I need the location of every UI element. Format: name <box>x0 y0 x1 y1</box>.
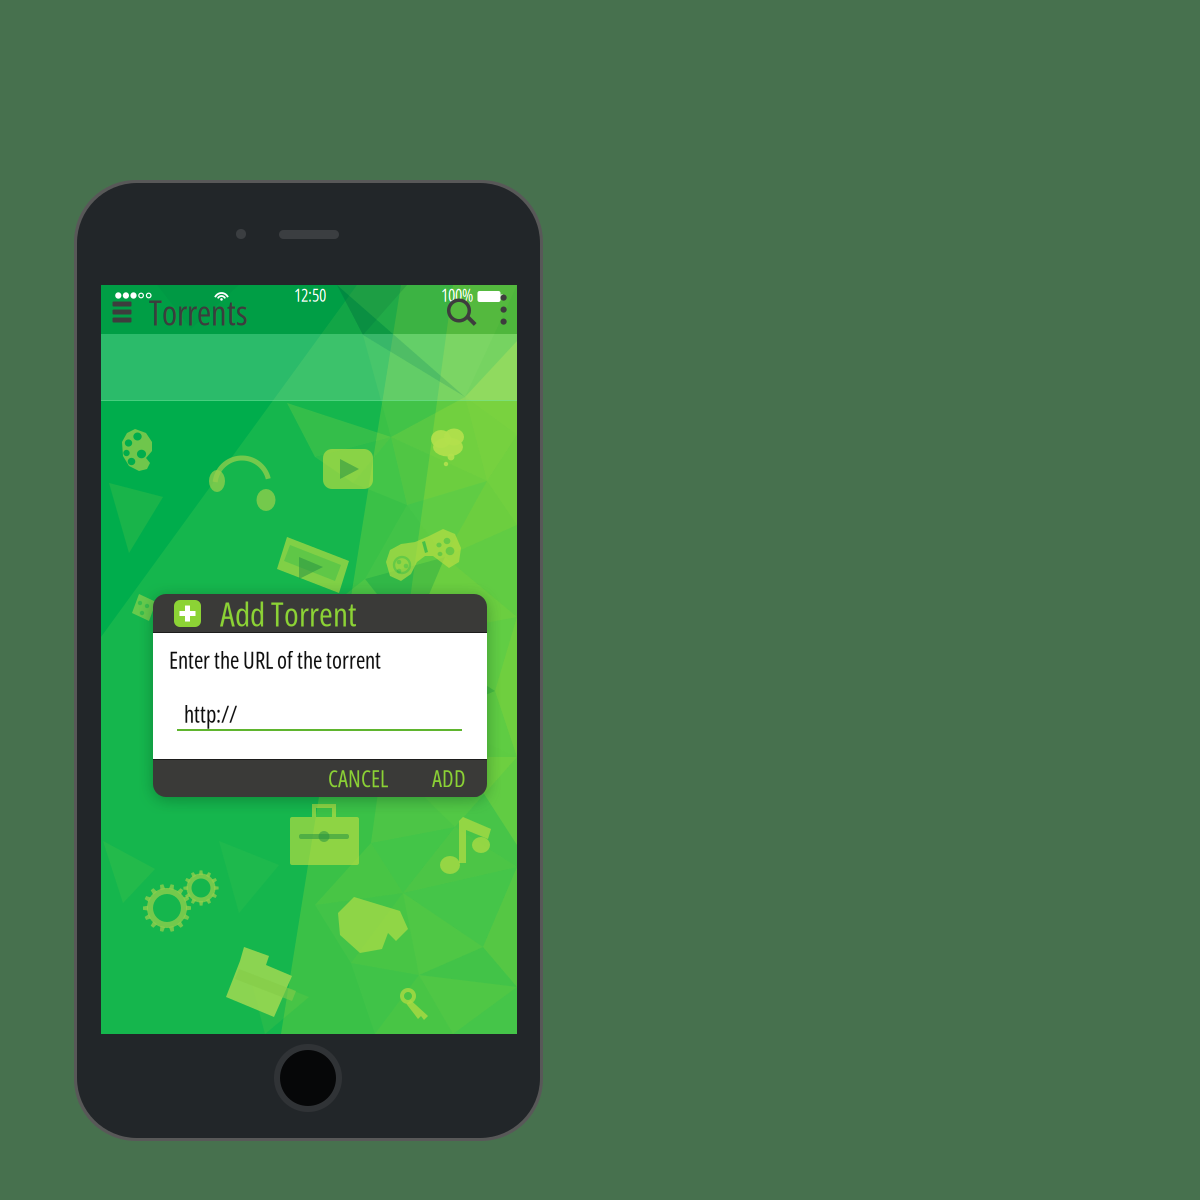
staticText: Enter the URL of the torrent <box>169 645 381 675</box>
button[interactable]: CANCEL <box>315 760 401 797</box>
staticText: CANCEL <box>328 763 388 794</box>
staticText: Torrents <box>149 288 248 336</box>
staticText: Add Torrent <box>220 591 356 636</box>
staticText: 100% <box>441 283 473 307</box>
button[interactable]: Search <box>445 299 485 327</box>
button[interactable]: ADD <box>419 760 479 797</box>
staticText: 12:50 <box>294 283 326 307</box>
staticText: ADD <box>432 763 466 794</box>
button[interactable]: More options <box>495 296 513 324</box>
staticText: http:// <box>184 699 237 729</box>
button[interactable]: Menu <box>108 299 136 324</box>
